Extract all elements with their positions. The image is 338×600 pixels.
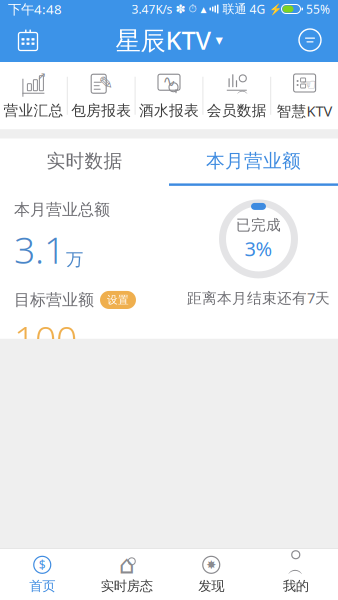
staticText: 发现 [198,578,224,594]
staticText: 0 [171,543,180,564]
staticText: 本月营业额 [206,149,301,172]
staticText: 3.47K/s [131,1,172,17]
button[interactable]: ⌂ [84,549,169,600]
staticText: ☜ [302,75,316,94]
staticText: 10-21(六) [14,580,81,600]
staticText: 营业汇总 [3,102,63,120]
staticText: ⚡ [265,2,281,16]
staticText: ︵ [288,559,304,579]
staticText: ✎ [99,73,114,93]
button[interactable]: ✎ [68,63,135,129]
staticText: 会员数据 [207,102,267,120]
button[interactable]: ☜ [271,62,338,129]
staticText: 10-22(日) [14,543,81,564]
staticText: $ [39,557,46,573]
staticText: 联通 [218,2,246,16]
staticText: 我的 [283,578,309,594]
staticText: 下午4:48 [8,0,62,18]
staticText: 已完成 [236,216,281,234]
button[interactable]: 消息 [288,18,332,62]
staticText: 3% [244,235,272,262]
button[interactable]: ︵ [253,549,338,600]
staticText: 实时房态 [101,578,153,594]
staticText: 本月营业总额 [14,200,110,220]
staticText: 3.1 [14,225,65,274]
button[interactable]: ︵ [203,63,270,129]
button[interactable]: 日历 [6,18,50,62]
button[interactable]: ↗ [0,63,67,129]
button[interactable]: 设置 [100,291,136,309]
staticText: 包房报表 [71,102,131,120]
staticText: 55% [303,1,330,17]
staticText: 设置 [107,293,129,306]
button[interactable]: ✸ [169,549,253,600]
button[interactable]: 星辰KTV [109,17,228,63]
staticText: 100 [14,314,77,363]
staticText: 实时数据 [46,149,122,172]
staticText: 星辰KTV [115,23,211,57]
staticText: ▴ [196,2,206,16]
staticText: 智慧KTV [277,101,333,120]
staticText: ✽ [175,2,185,16]
staticText: 目标营业额 [14,290,94,310]
button[interactable]: $ [0,549,84,600]
staticText: ⌂ [119,550,135,579]
staticText: 首页 [29,578,55,594]
button[interactable]: 实时数据 [0,138,169,183]
button[interactable]: ∿ [136,63,202,129]
staticText: 距离本月结束还有7天 [187,288,330,307]
staticText: 0 [235,543,244,564]
staticText: ▾ [215,32,222,48]
staticText: ︵ [237,83,249,98]
staticText: ⏱ [185,4,196,14]
button[interactable]: 本月营业额 [169,138,338,183]
staticText: ∿ [162,72,175,90]
staticText: 0 [315,543,324,564]
staticText: ↗ [37,70,46,82]
staticText: 酒水报表 [139,102,199,120]
staticText: 万 [66,249,83,270]
staticText: 4G [246,1,265,17]
staticText: ✸ [206,558,216,572]
